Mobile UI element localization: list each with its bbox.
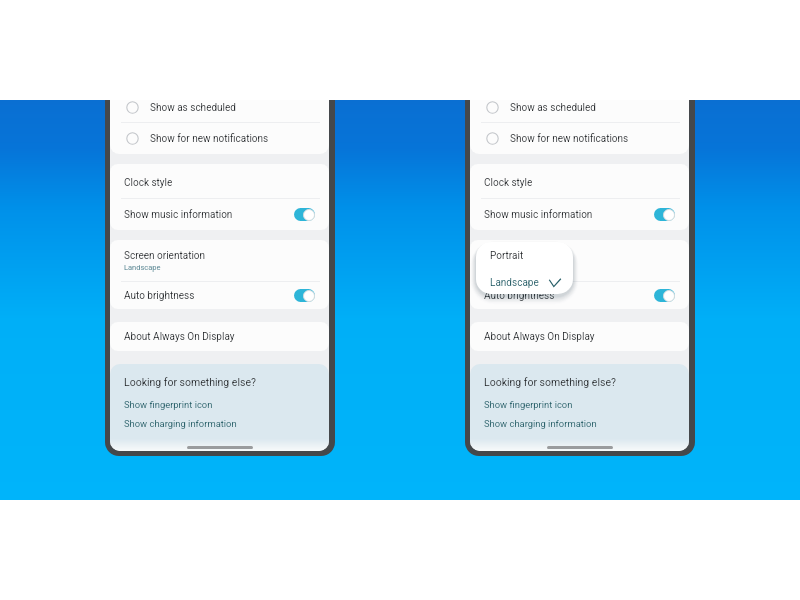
staticText: Portrait xyxy=(490,250,524,262)
staticText: Auto brightness xyxy=(484,290,555,302)
button[interactable]: Clock style xyxy=(470,164,689,198)
staticText: Show as scheduled xyxy=(150,102,236,114)
button[interactable]: Screen orientation xyxy=(470,240,689,281)
button[interactable]: Show charging information xyxy=(124,418,237,429)
other: Selected xyxy=(549,279,561,287)
button[interactable]: Clock style xyxy=(110,164,329,198)
staticText: Clock style xyxy=(484,177,533,189)
button[interactable]: Show fingerprint icon xyxy=(124,399,213,410)
staticText: Landscape xyxy=(490,277,539,289)
button[interactable]: Show music information xyxy=(470,199,689,230)
staticText: About Always On Display xyxy=(484,331,595,343)
button[interactable]: Show fingerprint icon xyxy=(484,399,573,410)
staticText: About Always On Display xyxy=(124,331,235,343)
button[interactable]: About Always On Display xyxy=(110,322,329,351)
staticText: Auto brightness xyxy=(124,290,195,302)
staticText: Screen orientation xyxy=(484,250,566,262)
button[interactable]: Auto brightness xyxy=(470,282,689,309)
staticText: Looking for something else? xyxy=(484,376,616,388)
button[interactable]: Show music information xyxy=(110,199,329,230)
button[interactable]: Landscape xyxy=(476,269,573,294)
staticText: Landscape xyxy=(124,263,161,272)
staticText: Show music information xyxy=(484,209,593,221)
staticText: Screen orientation xyxy=(124,250,206,262)
staticText: Show as scheduled xyxy=(510,102,596,114)
button[interactable]: Show as scheduled xyxy=(110,100,329,122)
button[interactable]: Auto brightness xyxy=(110,282,329,309)
staticText: Looking for something else? xyxy=(124,376,256,388)
button[interactable]: Portrait xyxy=(476,242,573,269)
staticText: Show for new notifications xyxy=(510,133,629,145)
staticText: Show for new notifications xyxy=(150,133,269,145)
button[interactable]: Show for new notifications xyxy=(110,123,329,154)
button[interactable]: Show charging information xyxy=(484,418,597,429)
button[interactable]: Show for new notifications xyxy=(470,123,689,154)
staticText: Show music information xyxy=(124,209,233,221)
button[interactable]: Screen orientation xyxy=(110,240,329,281)
button[interactable]: About Always On Display xyxy=(470,322,689,351)
button[interactable]: Show as scheduled xyxy=(470,100,689,122)
staticText: Clock style xyxy=(124,177,173,189)
